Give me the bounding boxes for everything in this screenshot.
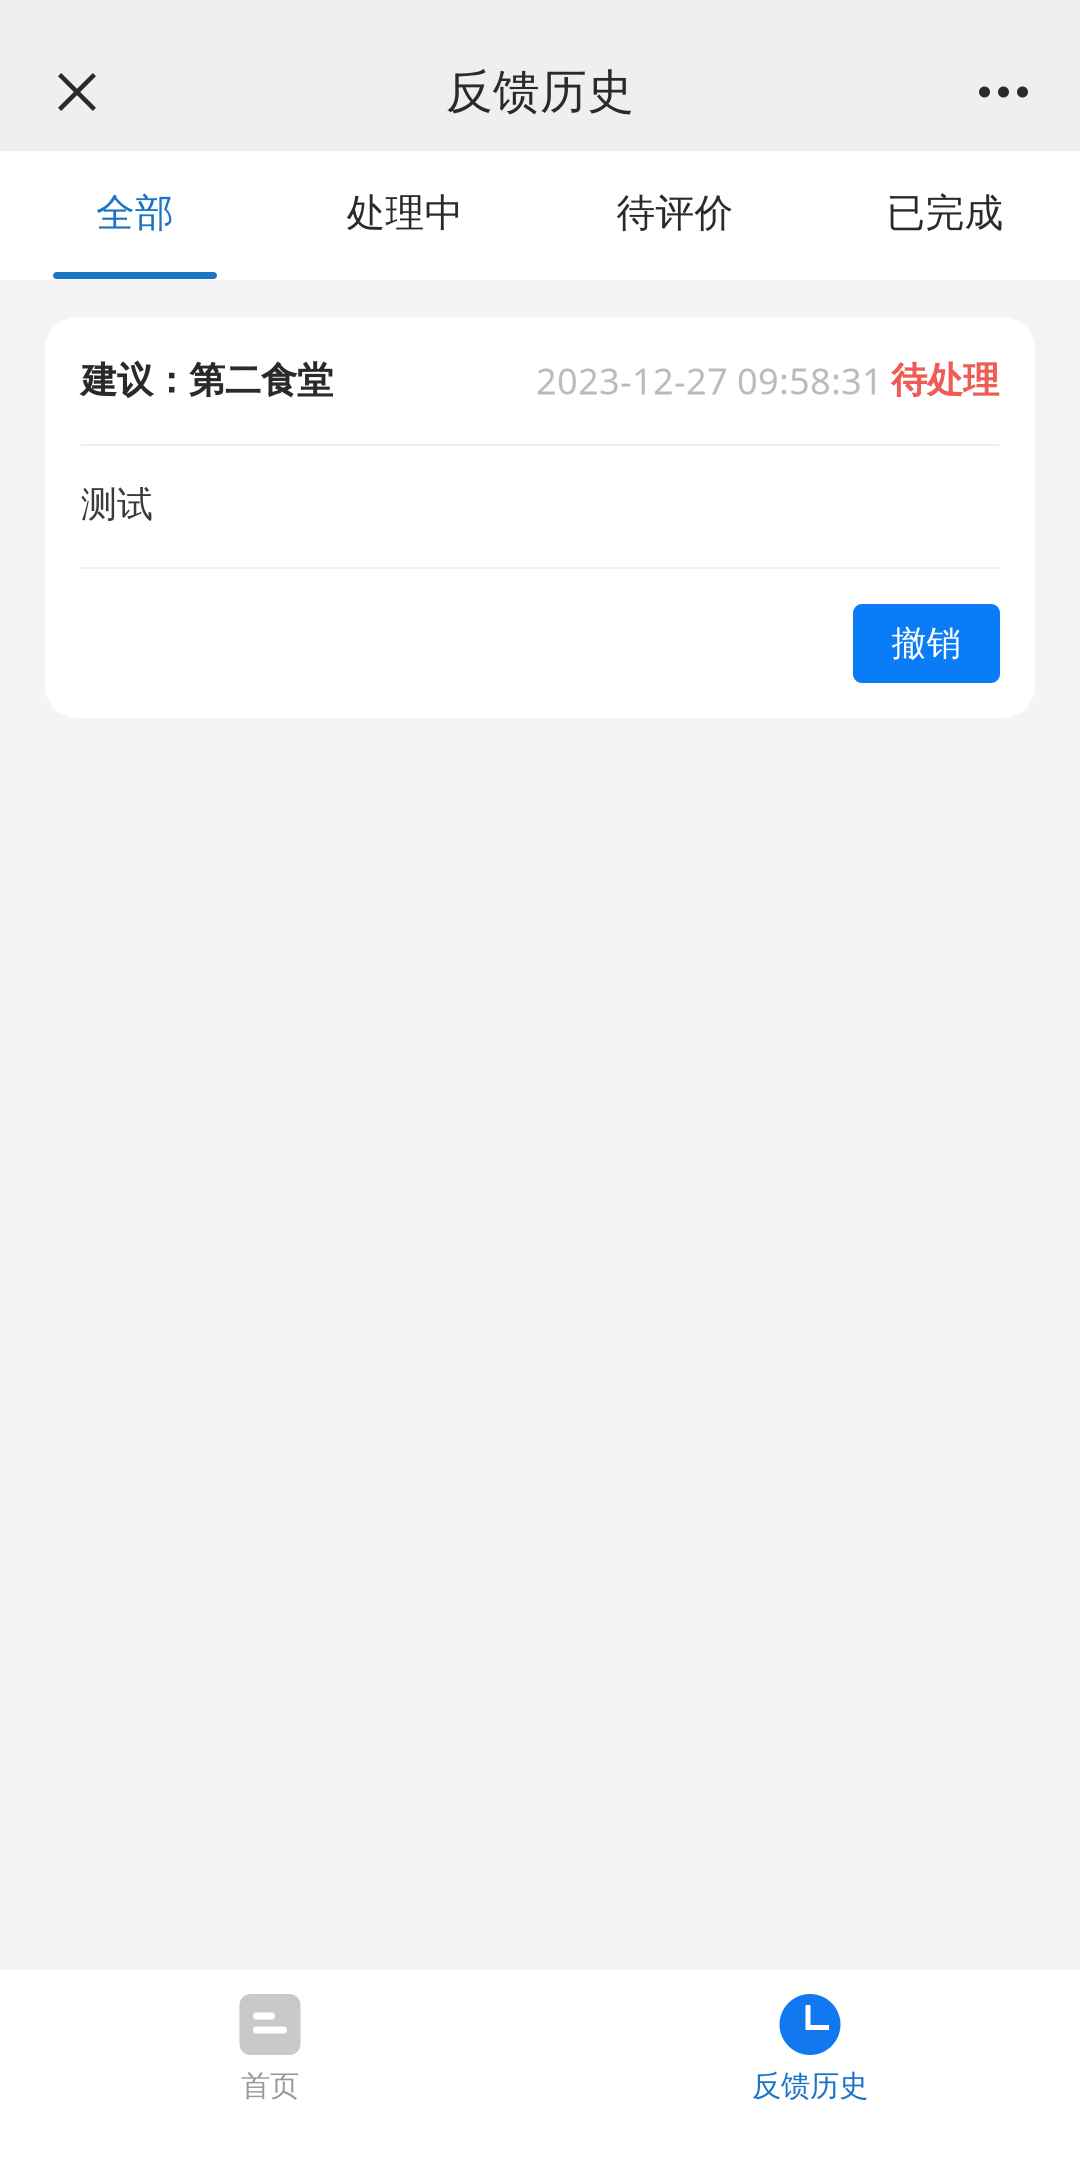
button[interactable]: 反馈历史: [540, 1970, 1080, 2160]
button[interactable]: 待评价: [540, 151, 810, 280]
button[interactable]: 全部: [0, 151, 270, 280]
staticText: 建议：第二食堂: [81, 358, 333, 403]
button[interactable]: 已完成: [810, 151, 1080, 280]
staticText: 2023-12-27 09:58:31: [536, 357, 883, 404]
button[interactable]: Close: [0, 33, 154, 151]
staticText: 测试: [81, 482, 153, 527]
staticText: 处理中: [346, 189, 463, 237]
staticText: 待评价: [616, 189, 733, 237]
staticText: 首页: [241, 2068, 299, 2104]
button[interactable]: More: [927, 33, 1080, 151]
staticText: 撤销: [891, 622, 961, 665]
staticText: 待处理: [891, 358, 999, 403]
staticText: 已完成: [886, 189, 1003, 237]
button[interactable]: 撤销: [853, 604, 1000, 683]
staticText: 反馈历史: [752, 2068, 868, 2104]
staticText: 反馈历史: [446, 63, 634, 121]
staticText: 全部: [96, 189, 174, 237]
button[interactable]: 处理中: [270, 151, 540, 280]
button[interactable]: 首页: [0, 1970, 540, 2160]
